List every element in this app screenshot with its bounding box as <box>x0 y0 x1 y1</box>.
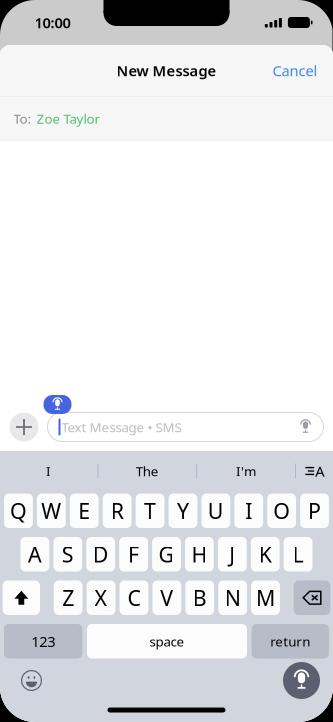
button[interactable]: N <box>218 580 247 615</box>
staticText: 10:00 <box>34 13 70 32</box>
staticText: I <box>46 462 51 480</box>
button[interactable]: return <box>252 624 329 658</box>
staticText: return <box>270 632 310 650</box>
staticText: T <box>144 497 156 525</box>
button[interactable]: A <box>20 537 49 571</box>
staticText: M <box>256 584 275 612</box>
staticText: R <box>111 497 124 525</box>
button[interactable]: W <box>37 493 66 528</box>
button[interactable]: C <box>119 580 148 615</box>
button[interactable]: O <box>267 493 296 528</box>
staticText: E <box>78 497 90 525</box>
staticText: space <box>149 632 184 650</box>
button[interactable]: R <box>103 493 131 528</box>
staticText: A <box>315 461 324 481</box>
button[interactable]: Dictation <box>279 658 323 702</box>
button[interactable]: X <box>87 580 115 615</box>
staticText: V <box>160 584 173 612</box>
staticText: Z <box>62 584 74 612</box>
button[interactable]: P <box>300 493 329 528</box>
button[interactable]: S <box>53 537 82 571</box>
staticText: 123 <box>31 631 55 651</box>
staticText: Cancel <box>272 61 317 80</box>
staticText: N <box>225 584 241 612</box>
staticText: L <box>293 540 304 568</box>
button[interactable]: I'm <box>197 451 295 490</box>
staticText: U <box>208 497 224 525</box>
button[interactable]: M <box>251 580 280 615</box>
button[interactable]: Text formatting <box>296 451 333 490</box>
staticText: O <box>273 497 290 525</box>
staticText: Q <box>10 497 27 525</box>
staticText: H <box>191 540 207 568</box>
staticText: C <box>127 584 140 612</box>
staticText: F <box>128 540 139 568</box>
staticText: Zoe Taylor <box>36 110 100 127</box>
button[interactable]: Q <box>4 493 33 528</box>
button[interactable]: Add attachment <box>9 412 38 441</box>
button[interactable]: Emoji keyboard <box>9 658 53 702</box>
button[interactable]: V <box>152 580 181 615</box>
staticText: G <box>158 540 174 568</box>
staticText: B <box>193 584 207 612</box>
button[interactable]: T <box>136 493 164 528</box>
staticText: The <box>136 462 159 480</box>
button[interactable]: I <box>234 493 263 528</box>
staticText: Y <box>177 497 189 525</box>
staticText: To: <box>13 110 31 127</box>
staticText: J <box>229 540 235 568</box>
button[interactable]: F <box>119 537 148 571</box>
button[interactable]: G <box>152 537 181 571</box>
button[interactable]: Z <box>54 580 83 615</box>
button[interactable]: Shift <box>3 580 40 615</box>
button[interactable]: Dictate <box>43 395 71 414</box>
button[interactable]: E <box>70 493 99 528</box>
staticText: S <box>62 540 74 568</box>
staticText: D <box>93 540 109 568</box>
button[interactable]: space <box>87 624 247 658</box>
button[interactable]: J <box>218 537 247 571</box>
staticText: W <box>41 497 61 525</box>
staticText: A <box>28 540 42 568</box>
button[interactable]: D <box>86 537 115 571</box>
staticText: P <box>308 497 321 525</box>
button[interactable]: K <box>251 537 280 571</box>
staticText: Text Message • SMS <box>61 418 181 436</box>
button[interactable]: Delete <box>294 580 330 615</box>
staticText: New Message <box>116 61 216 80</box>
button[interactable]: 123 <box>4 624 82 658</box>
staticText: I <box>245 497 252 525</box>
button[interactable]: Zoe Taylor <box>36 110 100 127</box>
button[interactable]: Cancel <box>262 53 333 88</box>
button[interactable]: Y <box>168 493 197 528</box>
button[interactable]: B <box>185 580 214 615</box>
button[interactable]: L <box>284 537 312 571</box>
button[interactable]: U <box>201 493 230 528</box>
button[interactable]: I <box>0 451 97 490</box>
staticText: K <box>259 540 272 568</box>
staticText: X <box>95 584 108 612</box>
button[interactable]: H <box>185 537 214 571</box>
staticText: I'm <box>236 462 256 480</box>
button[interactable]: The <box>98 451 196 490</box>
